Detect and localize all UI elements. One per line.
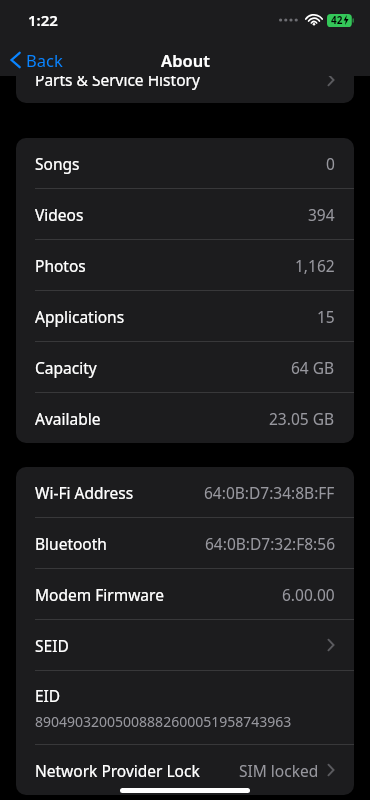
- button[interactable]: Available: [16, 393, 354, 443]
- staticText: 42: [331, 13, 343, 27]
- staticText: EID: [35, 685, 61, 706]
- staticText: 15: [317, 306, 335, 327]
- staticText: Bluetooth: [35, 533, 107, 554]
- staticText: 0: [326, 153, 335, 174]
- button[interactable]: Parts & Service History: [16, 56, 354, 103]
- button[interactable]: Songs: [16, 138, 354, 188]
- staticText: 394: [308, 204, 335, 225]
- staticText: Videos: [35, 204, 84, 225]
- staticText: SIM locked: [239, 760, 319, 781]
- button[interactable]: Videos: [16, 189, 354, 239]
- button[interactable]: Modem Firmware: [16, 569, 354, 619]
- staticText: Songs: [35, 153, 80, 174]
- button[interactable]: Bluetooth: [16, 518, 354, 568]
- staticText: Wi-Fi Address: [35, 482, 134, 503]
- staticText: 64:0B:D7:34:8B:FF: [204, 482, 335, 503]
- staticText: 89049032005008882600051958743963: [35, 712, 292, 731]
- staticText: 1,162: [295, 255, 335, 276]
- staticText: 23.05 GB: [269, 408, 335, 429]
- button[interactable]: SEID: [16, 620, 354, 670]
- staticText: Parts & Service History: [35, 69, 200, 90]
- staticText: SEID: [35, 635, 69, 656]
- staticText: 1:22: [28, 10, 58, 30]
- button[interactable]: Capacity: [16, 342, 354, 392]
- staticText: Back: [26, 49, 63, 71]
- button[interactable]: Network Provider Lock: [16, 745, 354, 795]
- staticText: About: [161, 49, 210, 71]
- staticText: Photos: [35, 255, 86, 276]
- staticText: 64:0B:D7:32:F8:56: [205, 533, 335, 554]
- staticText: 6.00.00: [282, 584, 335, 605]
- button[interactable]: Back: [0, 45, 73, 75]
- staticText: 64 GB: [291, 357, 335, 378]
- button[interactable]: EID: [16, 671, 354, 744]
- button[interactable]: Applications: [16, 291, 354, 341]
- staticText: Modem Firmware: [35, 584, 164, 605]
- staticText: Capacity: [35, 357, 97, 378]
- button[interactable]: Wi-Fi Address: [16, 467, 354, 517]
- staticText: Applications: [35, 306, 125, 327]
- button[interactable]: Photos: [16, 240, 354, 290]
- staticText: Network Provider Lock: [35, 760, 200, 781]
- staticText: Available: [35, 408, 101, 429]
